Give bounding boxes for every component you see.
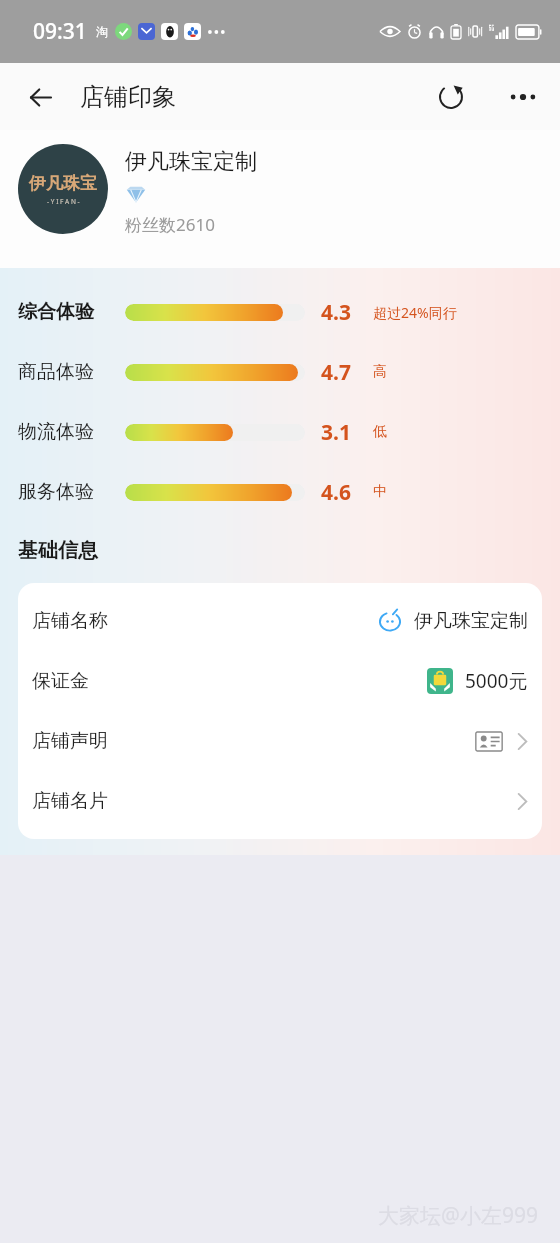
- staticText: 店铺名片: [32, 789, 108, 813]
- staticText: 09:31: [33, 17, 87, 46]
- staticText: 中: [373, 483, 387, 501]
- staticText: 综合体验: [18, 300, 94, 324]
- staticText: 店铺声明: [32, 729, 108, 753]
- button[interactable]: 店铺名片: [18, 771, 542, 831]
- staticText: 基础信息: [18, 538, 98, 563]
- staticText: 伊凡珠宝定制: [414, 609, 528, 633]
- staticText: 服务体验: [18, 480, 94, 504]
- staticText: 伊凡珠宝定制: [125, 148, 257, 176]
- staticText: 4.3: [321, 298, 351, 327]
- staticText: 保证金: [32, 669, 89, 693]
- button[interactable]: 更多: [500, 74, 546, 120]
- staticText: 粉丝数2610: [125, 213, 215, 236]
- staticText: 店铺名称: [32, 609, 108, 633]
- staticText: 大家坛@小左999: [378, 1201, 538, 1230]
- button[interactable]: 返回: [16, 73, 64, 121]
- staticText: 超过24%同行: [373, 303, 457, 322]
- staticText: 5000元: [465, 668, 528, 694]
- staticText: 物流体验: [18, 420, 94, 444]
- staticText: 3.1: [321, 418, 351, 447]
- button[interactable]: 保证金: [18, 651, 542, 711]
- staticText: 低: [373, 423, 387, 441]
- button[interactable]: 店铺声明: [18, 711, 542, 771]
- button[interactable]: 刷新: [428, 74, 474, 120]
- staticText: 4.6: [321, 478, 351, 507]
- button[interactable]: 店铺名称: [18, 591, 542, 651]
- staticText: - Y I F A N -: [47, 197, 80, 206]
- staticText: 伊凡珠宝: [29, 173, 97, 194]
- staticText: 店铺印象: [80, 82, 176, 112]
- button[interactable]: 物流体验: [0, 402, 560, 462]
- staticText: 高: [373, 363, 387, 381]
- staticText: 淘: [96, 24, 108, 39]
- button[interactable]: 商品体验: [0, 342, 560, 402]
- staticText: 商品体验: [18, 360, 94, 384]
- button[interactable]: 综合体验: [0, 282, 560, 342]
- staticText: 4.7: [321, 358, 351, 387]
- button[interactable]: 服务体验: [0, 462, 560, 522]
